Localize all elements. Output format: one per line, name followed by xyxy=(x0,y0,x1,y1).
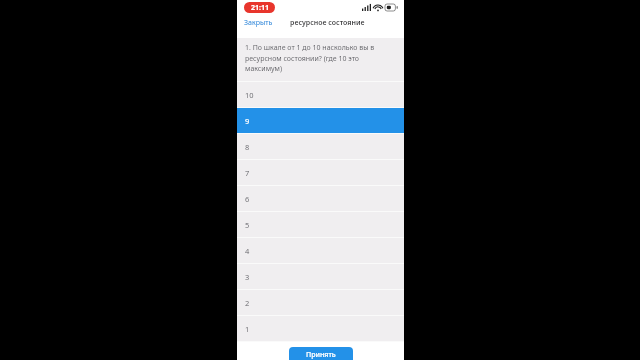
button[interactable]: 7 xyxy=(237,160,404,185)
staticText: 1 xyxy=(245,324,250,334)
staticText: Принять xyxy=(306,350,336,360)
staticText: 3 xyxy=(245,272,250,282)
button[interactable]: Закрыть xyxy=(237,15,280,31)
button[interactable]: 8 xyxy=(237,134,404,159)
staticText: 6 xyxy=(245,194,250,204)
staticText: ресурсное состояние xyxy=(290,18,365,28)
staticText: 21:11 xyxy=(251,3,269,13)
staticText: 5 xyxy=(245,220,250,230)
button[interactable]: 1 xyxy=(237,316,404,341)
staticText: 4 xyxy=(245,246,250,256)
staticText: 8 xyxy=(245,142,250,152)
staticText: 7 xyxy=(245,168,250,178)
staticText: 1. По шкале от 1 до 10 насколько вы в ре… xyxy=(245,43,392,73)
staticText: 9 xyxy=(245,116,250,126)
button[interactable]: 2 xyxy=(237,290,404,315)
button[interactable]: 4 xyxy=(237,238,404,263)
staticText: 2 xyxy=(245,298,250,308)
button[interactable]: 9 xyxy=(237,108,404,133)
button[interactable]: 10 xyxy=(237,82,404,107)
button[interactable]: 3 xyxy=(237,264,404,289)
button[interactable]: 6 xyxy=(237,186,404,211)
staticText: Закрыть xyxy=(244,18,273,28)
button[interactable]: 5 xyxy=(237,212,404,237)
button[interactable]: Принять xyxy=(289,347,353,360)
staticText: 10 xyxy=(245,90,254,100)
